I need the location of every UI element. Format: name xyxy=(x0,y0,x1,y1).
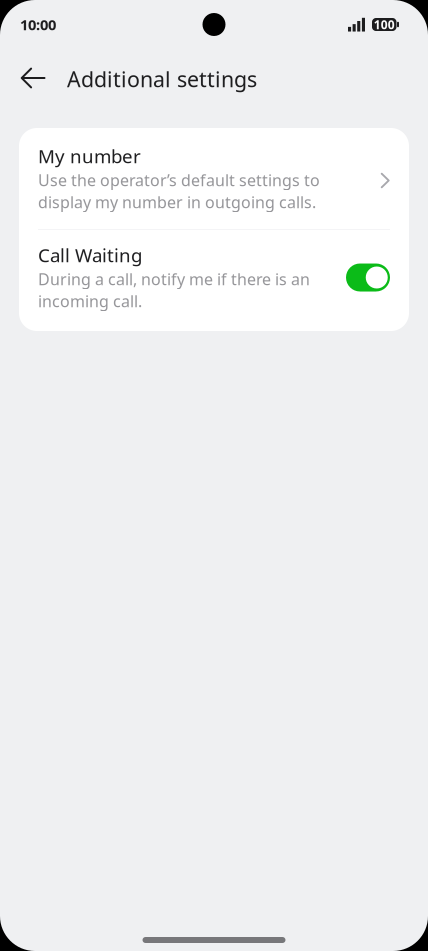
staticText: My number xyxy=(38,144,141,168)
staticText: Call Waiting xyxy=(38,243,142,267)
staticText: Use the operator’s default settings to xyxy=(38,169,320,191)
button[interactable]: Back xyxy=(10,52,56,104)
button[interactable]: Call Waiting xyxy=(346,263,390,291)
staticText: Additional settings xyxy=(67,65,257,93)
staticText: 100 xyxy=(374,16,395,32)
staticText: 10:00 xyxy=(20,15,56,34)
button[interactable]: My number xyxy=(19,128,409,229)
staticText: incoming call. xyxy=(38,290,142,312)
staticText: During a call, notify me if there is an xyxy=(38,268,310,290)
staticText: display my number in outgoing calls. xyxy=(38,191,316,213)
